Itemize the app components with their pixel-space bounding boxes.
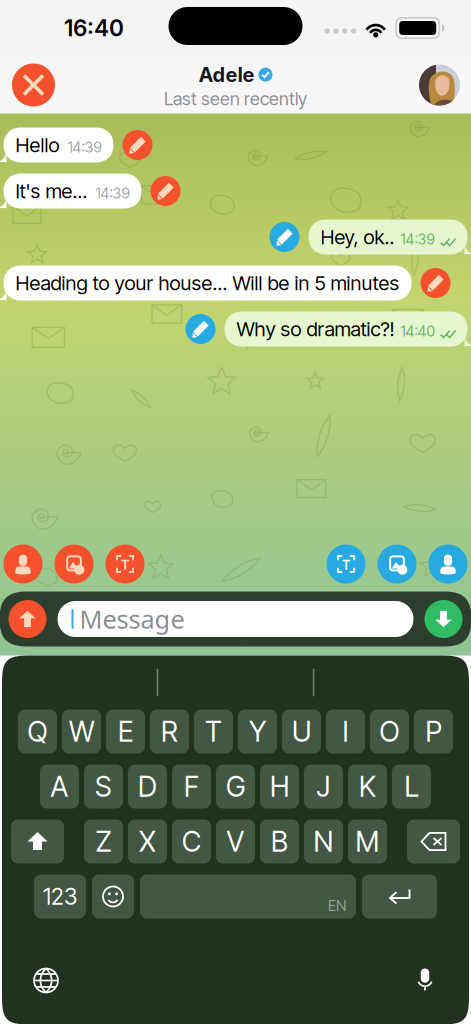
button[interactable]: C bbox=[172, 819, 211, 863]
button[interactable]: B bbox=[260, 819, 299, 863]
staticText: 123 bbox=[43, 883, 77, 910]
button[interactable]: D bbox=[128, 764, 167, 808]
staticText: 14:39 bbox=[95, 184, 129, 202]
staticText: Hello bbox=[15, 133, 59, 157]
staticText: K bbox=[359, 770, 376, 803]
staticText: 16:40 bbox=[64, 14, 124, 42]
button[interactable]: M bbox=[348, 819, 387, 863]
staticText: G bbox=[226, 770, 245, 803]
button[interactable]: U bbox=[282, 709, 321, 753]
staticText: Why so dramatic?! bbox=[236, 317, 394, 341]
button[interactable]: X bbox=[128, 819, 167, 863]
button[interactable]: Add photo bbox=[377, 544, 416, 583]
button[interactable]: R bbox=[150, 709, 189, 753]
button[interactable]: Send up bbox=[8, 600, 46, 638]
button[interactable]: Edit bbox=[122, 130, 152, 160]
staticText: Heading to your house... Will be in 5 mi… bbox=[15, 271, 399, 295]
staticText: EN bbox=[328, 897, 346, 914]
staticText: Message bbox=[79, 602, 184, 636]
button[interactable]: Q bbox=[18, 709, 57, 753]
button[interactable]: T bbox=[194, 709, 233, 753]
button[interactable]: Numbers bbox=[34, 874, 86, 918]
staticText: Q bbox=[27, 715, 47, 748]
button[interactable]: Contact bbox=[428, 544, 467, 583]
staticText: A bbox=[50, 770, 68, 803]
button[interactable]: E bbox=[106, 709, 145, 753]
button[interactable]: Emoji bbox=[92, 874, 134, 918]
button[interactable]: Scan text bbox=[105, 544, 144, 583]
staticText: D bbox=[138, 770, 157, 803]
button[interactable]: L bbox=[392, 764, 431, 808]
button[interactable]: Contact bbox=[3, 544, 42, 583]
button[interactable]: Edit bbox=[185, 314, 215, 344]
button[interactable]: Switch keyboard bbox=[26, 960, 66, 1000]
button[interactable]: V bbox=[216, 819, 255, 863]
button[interactable]: W bbox=[62, 709, 101, 753]
button[interactable]: Edit bbox=[269, 222, 299, 252]
staticText: I bbox=[342, 715, 348, 748]
staticText: 14:40 bbox=[400, 322, 434, 340]
button[interactable]: S bbox=[84, 764, 123, 808]
button[interactable]: Edit bbox=[420, 268, 450, 298]
staticText: Adele bbox=[198, 62, 254, 87]
button[interactable]: Shift bbox=[11, 819, 64, 863]
staticText: 14:39 bbox=[67, 138, 101, 156]
button[interactable]: A bbox=[40, 764, 79, 808]
staticText: T bbox=[342, 554, 350, 574]
button[interactable]: P bbox=[414, 709, 453, 753]
button[interactable]: Add photo bbox=[54, 544, 93, 583]
button[interactable]: Delete bbox=[407, 819, 460, 863]
button[interactable]: Z bbox=[84, 819, 123, 863]
staticText: It's me... bbox=[15, 179, 87, 203]
staticText: L bbox=[404, 770, 418, 803]
staticText: T bbox=[121, 554, 129, 574]
button[interactable]: Space bbox=[140, 874, 356, 918]
button[interactable]: O bbox=[370, 709, 409, 753]
staticText: Y bbox=[249, 715, 266, 748]
button[interactable]: Scan text bbox=[326, 544, 365, 583]
staticText: 14:39 bbox=[400, 230, 434, 248]
staticText: C bbox=[182, 825, 201, 858]
staticText: H bbox=[270, 770, 289, 803]
button[interactable]: J bbox=[304, 764, 343, 808]
staticText: T bbox=[205, 715, 222, 748]
button[interactable]: K bbox=[348, 764, 387, 808]
staticText: R bbox=[161, 715, 178, 748]
button[interactable]: Y bbox=[238, 709, 277, 753]
staticText: W bbox=[69, 715, 94, 748]
staticText: F bbox=[184, 770, 199, 803]
staticText: X bbox=[139, 825, 156, 858]
button[interactable]: Close bbox=[12, 63, 55, 106]
staticText: S bbox=[95, 770, 112, 803]
button[interactable]: Send down bbox=[424, 600, 462, 638]
staticText: V bbox=[226, 825, 244, 858]
staticText: O bbox=[379, 715, 399, 748]
button[interactable]: G bbox=[216, 764, 255, 808]
button[interactable]: Return bbox=[362, 874, 437, 918]
button[interactable]: I bbox=[326, 709, 365, 753]
button[interactable]: Dictate bbox=[405, 960, 445, 1000]
button[interactable]: F bbox=[172, 764, 211, 808]
button[interactable]: N bbox=[304, 819, 343, 863]
button[interactable]: Profile photo bbox=[419, 64, 460, 105]
staticText: P bbox=[425, 715, 441, 748]
staticText: Last seen recently bbox=[164, 88, 307, 109]
staticText: Hey, ok.. bbox=[320, 225, 394, 249]
staticText: E bbox=[118, 715, 133, 748]
staticText: B bbox=[271, 825, 288, 858]
button[interactable]: H bbox=[260, 764, 299, 808]
staticText: Z bbox=[95, 825, 111, 858]
staticText: N bbox=[313, 825, 333, 858]
button[interactable]: Edit bbox=[150, 176, 180, 206]
staticText: J bbox=[316, 770, 330, 803]
staticText: U bbox=[292, 715, 311, 748]
staticText: M bbox=[355, 825, 379, 858]
